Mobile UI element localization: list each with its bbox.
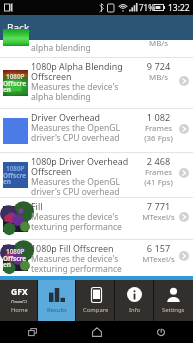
staticText: 1 082 Frames (36 Fps): [138, 111, 179, 143]
button[interactable]: alpha blending: [0, 40, 193, 57]
staticText: 1080p Driver Overhead Offscreen Measures…: [31, 155, 138, 197]
staticText: Settings: [162, 306, 185, 314]
staticText: Driver Overhead Measures the OpenGL driv…: [31, 111, 138, 143]
staticText: Offscreen: [3, 171, 28, 186]
staticText: Fill Measures the device's texturing per…: [31, 200, 138, 232]
staticText: 13:22: [168, 2, 190, 14]
staticText: Back: [7, 21, 30, 35]
staticText: 1080P: [6, 164, 25, 173]
other: Details: [179, 212, 189, 222]
button[interactable]: Home: [65, 321, 129, 343]
staticText: MB/s: [138, 38, 179, 49]
staticText: 9 724 MB/s: [138, 60, 179, 82]
button[interactable]: Fill Measures the device's texturing per…: [0, 198, 193, 239]
staticText: Results: [47, 306, 67, 314]
staticText: Info: [129, 306, 141, 314]
staticText: 2 468 Frames (41 Fps): [138, 155, 179, 187]
other: Details: [179, 168, 189, 178]
staticText: 71%: [139, 2, 155, 13]
staticText: Offscreen: [3, 254, 28, 269]
other: Details: [179, 251, 189, 261]
staticText: 7 771 MTexel/s: [138, 200, 179, 222]
button[interactable]: Back: [0, 15, 193, 40]
button[interactable]: Recent apps: [0, 321, 65, 343]
button[interactable]: Back: [129, 321, 193, 343]
button[interactable]: 1080P: [0, 58, 193, 108]
staticText: 1080p Fill Offscreen Measures the device…: [31, 242, 138, 274]
staticText: GFX: [11, 286, 28, 298]
button[interactable]: Info: [115, 280, 154, 321]
staticText: 1080P: [6, 72, 25, 81]
staticText: OpenGL: [11, 299, 28, 303]
other: Details: [179, 76, 189, 86]
button[interactable]: Settings: [154, 280, 193, 321]
other: Details: [179, 124, 189, 134]
button[interactable]: Driver Overhead Measures the OpenGL driv…: [0, 109, 193, 152]
staticText: 6 157 MTexel/s: [138, 242, 179, 264]
staticText: 1080p Alpha Blending Offscreen Measures …: [31, 60, 138, 102]
staticText: Offscreen: [3, 79, 28, 94]
button[interactable]: Results: [38, 280, 76, 321]
button[interactable]: GFX: [0, 280, 38, 321]
button[interactable]: Compare: [76, 280, 115, 321]
staticText: Home: [11, 306, 28, 314]
staticText: 1080P: [6, 247, 25, 256]
staticText: alpha blending: [31, 42, 91, 54]
button[interactable]: 1080P: [0, 153, 193, 197]
staticText: Compare: [83, 306, 109, 314]
button[interactable]: 1080P: [0, 240, 193, 276]
